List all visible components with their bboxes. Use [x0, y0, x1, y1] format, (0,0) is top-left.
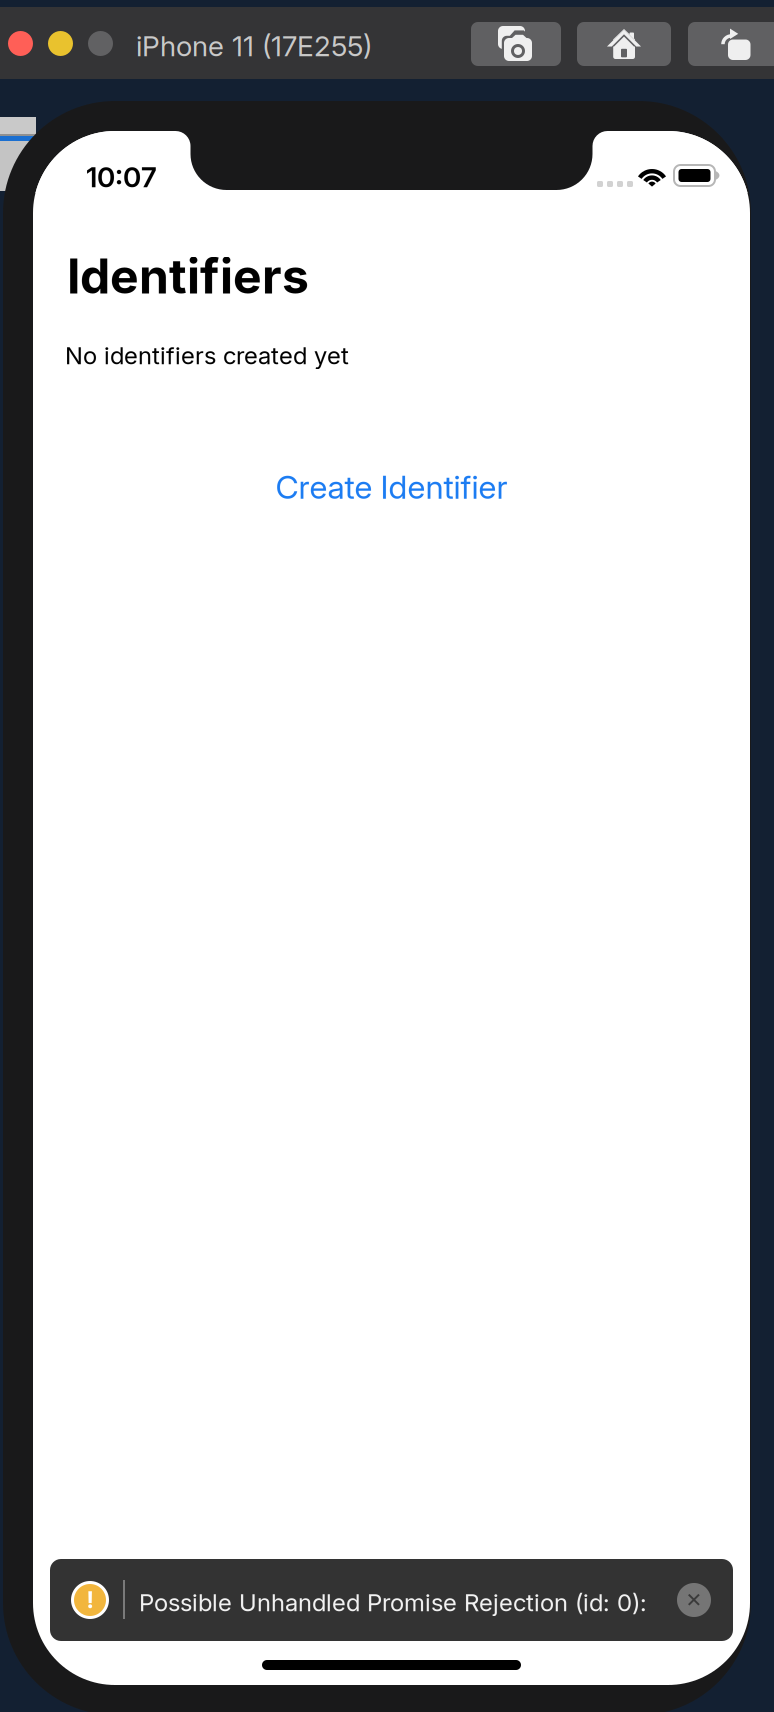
staticText: Identifiers — [67, 247, 309, 305]
staticText: Possible Unhandled Promise Rejection (id… — [139, 1588, 647, 1617]
staticText: 10:07 — [86, 160, 157, 194]
staticText: iPhone 11 (17E255) — [136, 29, 372, 63]
button[interactable]: Home — [577, 22, 671, 66]
staticText: Create Identifier — [275, 468, 507, 506]
button[interactable]: Close window — [8, 31, 33, 56]
button[interactable]: Zoom window — [88, 31, 113, 56]
button[interactable]: Dismiss error — [677, 1583, 711, 1617]
staticText: No identifiers created yet — [65, 341, 349, 370]
staticText: ! — [86, 1586, 93, 1614]
button[interactable]: Create Identifier — [33, 464, 750, 510]
staticText: ✕ — [685, 1588, 702, 1612]
button[interactable]: Share — [688, 22, 774, 66]
button[interactable]: Minimize window — [48, 31, 73, 56]
button[interactable]: Save screenshot — [471, 22, 561, 66]
